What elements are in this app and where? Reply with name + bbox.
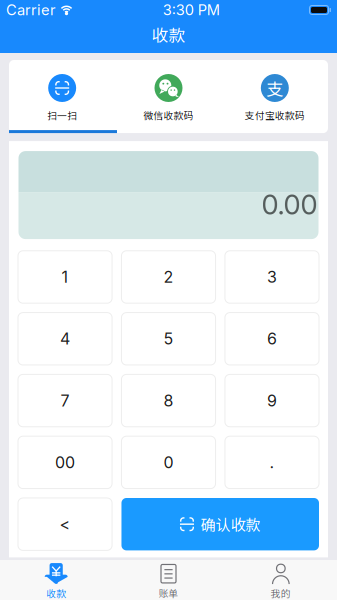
staticText: Carrier bbox=[6, 1, 56, 19]
button[interactable]: 6 bbox=[225, 313, 319, 365]
staticText: 0.00 bbox=[261, 188, 317, 221]
staticText: 收款 bbox=[46, 586, 66, 600]
staticText: 00 bbox=[55, 453, 75, 472]
staticText: 9 bbox=[267, 391, 277, 410]
staticText: 支 bbox=[266, 76, 283, 100]
staticText: 支付宝收款码 bbox=[245, 108, 305, 122]
button[interactable]: 扫一扫 bbox=[9, 74, 115, 122]
staticText: 5 bbox=[163, 329, 173, 348]
staticText: 微信收款码 bbox=[143, 108, 193, 122]
button[interactable]: . bbox=[225, 436, 319, 489]
staticText: 账单 bbox=[158, 586, 178, 600]
button[interactable]: 5 bbox=[121, 313, 216, 365]
button[interactable]: 2 bbox=[121, 251, 216, 303]
staticText: 0 bbox=[163, 453, 173, 472]
button[interactable]: 确认收款 bbox=[121, 498, 319, 550]
staticText: 扫一扫 bbox=[47, 108, 77, 122]
staticText: 收款 bbox=[151, 22, 185, 47]
button[interactable]: 收款 bbox=[0, 563, 112, 600]
staticText: 3:30 PM bbox=[163, 1, 220, 19]
staticText: 2 bbox=[163, 267, 173, 287]
button[interactable]: < bbox=[18, 498, 112, 550]
staticText: 6 bbox=[267, 329, 277, 348]
button[interactable]: 1 bbox=[18, 251, 112, 303]
button[interactable]: 8 bbox=[121, 374, 216, 427]
button[interactable]: 账单 bbox=[112, 563, 225, 600]
button[interactable]: 4 bbox=[18, 313, 112, 365]
staticText: 确认收款 bbox=[200, 513, 260, 535]
staticText: 我的 bbox=[271, 586, 291, 600]
staticText: < bbox=[59, 514, 70, 534]
button[interactable]: 3 bbox=[225, 251, 319, 303]
button[interactable]: 00 bbox=[18, 436, 112, 489]
staticText: 1 bbox=[61, 267, 68, 287]
button[interactable]: 9 bbox=[225, 374, 319, 427]
button[interactable]: 微信收款码 bbox=[115, 74, 222, 122]
staticText: 4 bbox=[60, 329, 70, 348]
button[interactable]: 0 bbox=[121, 436, 216, 489]
button[interactable]: 支 bbox=[222, 74, 328, 122]
staticText: 7 bbox=[60, 391, 69, 410]
staticText: 3 bbox=[267, 267, 277, 287]
button[interactable]: 我的 bbox=[225, 563, 337, 600]
button[interactable]: 7 bbox=[18, 374, 112, 427]
staticText: 8 bbox=[163, 391, 173, 410]
staticText: . bbox=[269, 453, 274, 472]
